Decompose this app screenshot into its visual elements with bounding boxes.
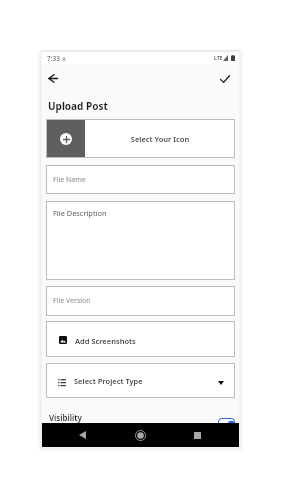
staticText: File Name <box>53 175 86 185</box>
staticText: Upload Post <box>48 99 108 113</box>
button[interactable]: Home <box>130 425 150 445</box>
button[interactable]: Select Project Type <box>46 363 235 398</box>
staticText: LTE <box>214 55 223 62</box>
button[interactable]: Recent apps <box>187 425 207 445</box>
staticText: Select Your Icon <box>85 134 235 144</box>
staticText: 7:33 <box>47 54 60 63</box>
button[interactable]: File Description <box>46 201 235 280</box>
staticText: File Version <box>53 296 91 306</box>
button[interactable]: Back <box>44 69 62 87</box>
button[interactable]: Visibility toggle <box>218 418 235 429</box>
staticText: Add Screenshots <box>75 336 136 346</box>
staticText: Select Project Type <box>74 376 143 386</box>
button[interactable]: Back <box>72 425 92 445</box>
staticText: Visibility <box>49 412 82 423</box>
button[interactable]: Add Screenshots <box>46 321 235 357</box>
button[interactable]: File Name <box>46 165 235 194</box>
button[interactable]: Select Your Icon <box>46 119 235 158</box>
staticText: File Description <box>53 208 107 218</box>
button[interactable]: Visibility <box>49 405 232 429</box>
button[interactable]: Save <box>216 70 234 88</box>
button[interactable]: File Version <box>46 286 235 316</box>
